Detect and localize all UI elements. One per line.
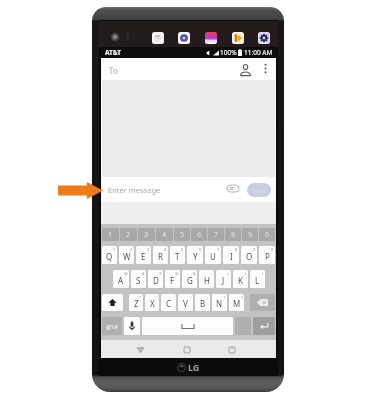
button[interactable]: 0 <box>259 246 275 264</box>
staticText: Enter message <box>108 185 161 195</box>
button[interactable]: Recent apps <box>224 342 239 357</box>
button[interactable]: 7 <box>208 228 224 241</box>
button[interactable]: Notification <box>232 32 244 44</box>
staticText: : <box>190 295 192 300</box>
staticText: ( <box>245 271 247 276</box>
button[interactable]: ? <box>229 294 244 311</box>
button[interactable]: Space <box>142 317 233 335</box>
button[interactable]: Voice input <box>124 317 140 335</box>
button[interactable]: 3 <box>138 228 155 241</box>
staticText: C <box>166 298 172 309</box>
staticText: O <box>246 251 253 262</box>
button[interactable]: + <box>216 270 231 288</box>
button[interactable]: 2 <box>120 228 137 241</box>
staticText: R <box>158 251 163 262</box>
button[interactable]: 8 <box>225 228 241 241</box>
button[interactable]: 4 <box>156 228 173 241</box>
staticText: L <box>255 275 260 286</box>
button[interactable]: 1 <box>102 228 119 241</box>
button[interactable]: Notification <box>178 32 190 44</box>
staticText: Z <box>134 298 139 309</box>
button[interactable]: Backspace <box>250 294 275 311</box>
staticText: M <box>233 298 241 309</box>
staticText: ? <box>241 295 243 300</box>
button[interactable]: ! <box>212 294 227 311</box>
button[interactable]: # <box>131 270 146 288</box>
staticText: AT&T <box>105 48 121 57</box>
button[interactable]: Back <box>133 342 148 357</box>
staticText: N <box>216 298 223 309</box>
button[interactable]: & <box>182 270 197 288</box>
button[interactable]: 6 <box>191 228 207 241</box>
staticText: * <box>139 295 142 300</box>
button[interactable]: 9 <box>242 228 258 241</box>
button[interactable]: 1 <box>102 246 117 264</box>
button[interactable]: 6 <box>187 246 203 264</box>
staticText: % <box>175 271 179 276</box>
staticText: LG <box>188 361 200 373</box>
staticText: @1# <box>106 323 118 330</box>
button[interactable]: 4 <box>153 246 168 264</box>
staticText: B <box>200 298 206 309</box>
button[interactable]: ) <box>250 270 265 288</box>
button[interactable]: ; <box>195 294 210 311</box>
staticText: - <box>211 271 213 276</box>
button[interactable]: ( <box>233 270 248 288</box>
button[interactable]: 5 <box>174 228 190 241</box>
staticText: ; <box>207 295 209 300</box>
button[interactable]: 8 <box>223 246 239 264</box>
staticText: 4 <box>164 247 167 252</box>
button[interactable]: $ <box>148 270 163 288</box>
staticText: + <box>227 271 230 276</box>
staticText: 0 <box>265 230 270 240</box>
button[interactable]: Enter <box>253 317 275 335</box>
staticText: ! <box>224 295 226 300</box>
button[interactable]: Notification <box>258 32 270 44</box>
staticText: " <box>156 295 158 300</box>
button[interactable]: " <box>145 294 159 311</box>
staticText: $ <box>159 271 162 276</box>
button[interactable]: Symbols <box>102 317 122 335</box>
button[interactable]: : <box>178 294 193 311</box>
staticText: X <box>150 298 155 309</box>
button[interactable]: 5 <box>170 246 185 264</box>
button[interactable]: Add recipient from contacts <box>237 61 254 78</box>
staticText: W <box>123 251 131 262</box>
staticText: ' <box>174 295 175 300</box>
button[interactable]: 2 <box>119 246 134 264</box>
staticText: 1 <box>113 247 116 252</box>
button[interactable]: @ <box>113 270 129 288</box>
staticText: & <box>193 271 196 276</box>
staticText: 2 <box>126 230 131 240</box>
staticText: G <box>187 275 193 286</box>
button[interactable]: Notification <box>205 32 217 44</box>
staticText: 11:00 AM <box>244 48 273 57</box>
staticText: 0 <box>271 247 274 252</box>
button[interactable]: 7 <box>205 246 221 264</box>
staticText: 6 <box>197 230 202 240</box>
staticText: 8 <box>235 247 238 252</box>
button[interactable]: Send <box>247 183 271 197</box>
button[interactable]: * <box>129 294 143 311</box>
staticText: 6 <box>199 247 202 252</box>
button[interactable]: 0 <box>259 228 275 241</box>
staticText: U <box>210 251 216 262</box>
button[interactable]: Home <box>179 342 194 357</box>
button[interactable]: ' <box>161 294 176 311</box>
staticText: V <box>183 298 188 309</box>
staticText: 5 <box>180 230 185 240</box>
button[interactable]: More options <box>258 61 273 76</box>
staticText: @ <box>124 271 128 276</box>
staticText: A <box>118 275 124 286</box>
button[interactable]: % <box>165 270 180 288</box>
staticText: 1 <box>108 230 113 240</box>
button[interactable]: Attach <box>225 180 241 196</box>
button[interactable]: 3 <box>136 246 151 264</box>
button[interactable]: Notification <box>152 32 164 44</box>
button[interactable]: 9 <box>241 246 257 264</box>
staticText: E <box>141 251 146 262</box>
button[interactable]: Shift <box>102 294 123 311</box>
staticText: Q <box>106 251 113 262</box>
button[interactable]: - <box>199 270 214 288</box>
